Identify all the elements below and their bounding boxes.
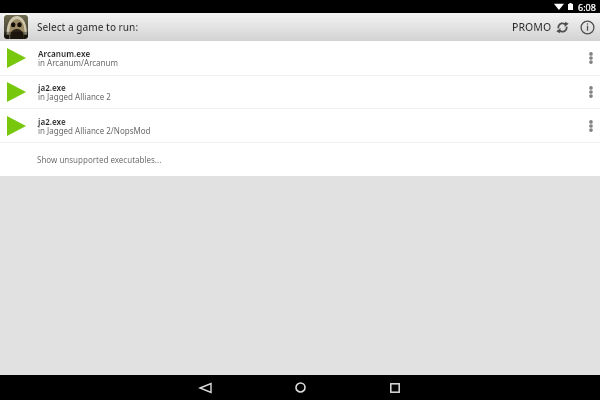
button[interactable]: Arcanum.exe: [0, 41, 600, 75]
button[interactable]: ja2.exe: [0, 109, 600, 142]
button[interactable]: Show unsupported executables...: [0, 143, 600, 176]
button[interactable]: Refresh: [551, 16, 573, 38]
staticText: 6:08: [578, 1, 596, 13]
staticText: PROMO: [512, 20, 552, 34]
button[interactable]: More options: [582, 41, 600, 75]
button[interactable]: Recents: [375, 375, 415, 400]
button[interactable]: PROMO: [506, 13, 558, 41]
button[interactable]: Back: [185, 375, 225, 400]
button[interactable]: App icon: [4, 15, 28, 39]
staticText: in Arcanum/Arcanum: [38, 57, 118, 68]
staticText: in Jagged Alliance 2/NopsMod: [38, 125, 151, 136]
staticText: Select a game to run:: [37, 20, 139, 34]
staticText: Arcanum.exe: [38, 48, 91, 59]
button[interactable]: Info: [576, 16, 598, 38]
staticText: ja2.exe: [38, 116, 66, 127]
button[interactable]: Home: [280, 375, 320, 400]
staticText: in Jagged Alliance 2: [38, 91, 111, 102]
button[interactable]: More options: [582, 76, 600, 108]
button[interactable]: ja2.exe: [0, 76, 600, 108]
staticText: ja2.exe: [38, 82, 66, 93]
staticText: Show unsupported executables...: [37, 154, 162, 165]
button[interactable]: More options: [582, 109, 600, 142]
